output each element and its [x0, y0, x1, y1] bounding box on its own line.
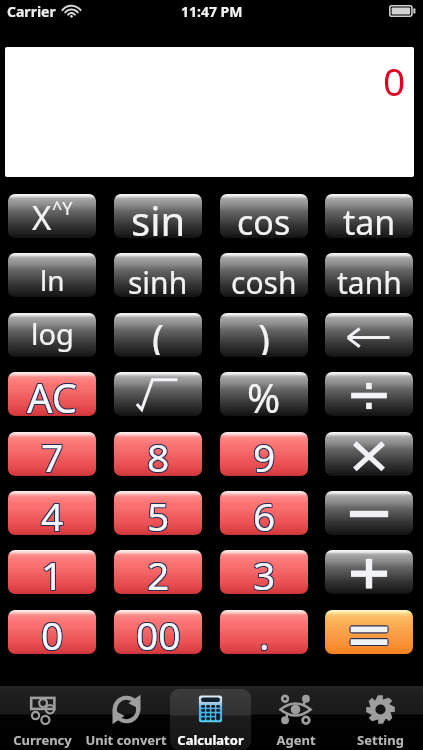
staticText: 0 — [42, 610, 65, 653]
staticText: tanh — [337, 262, 402, 297]
staticText: AC — [26, 372, 77, 414]
staticText: 8 — [147, 432, 170, 473]
button[interactable]: 6 — [220, 491, 308, 535]
button[interactable]: . — [220, 610, 308, 654]
staticText: 6 — [253, 491, 276, 534]
staticText: ln — [40, 261, 65, 297]
button[interactable]: Equals — [325, 610, 413, 654]
staticText: 2 — [147, 550, 170, 592]
button[interactable]: AC — [8, 372, 96, 416]
button[interactable]: ) — [220, 313, 308, 357]
staticText: Carrier — [7, 2, 56, 21]
staticText: 5 — [148, 491, 171, 532]
staticText: 0 — [41, 610, 64, 653]
staticText: 7 — [41, 432, 64, 475]
button[interactable]: 5 — [114, 491, 202, 535]
button[interactable]: 9 — [220, 432, 308, 476]
button[interactable]: Divide — [325, 372, 413, 416]
staticText: 0 — [42, 610, 65, 652]
button[interactable]: ln — [8, 253, 96, 297]
button[interactable]: tanh — [325, 253, 413, 297]
button[interactable]: Plus — [325, 550, 413, 594]
staticText: . — [258, 610, 269, 651]
button[interactable]: Setting — [338, 686, 423, 750]
staticText: 00 — [137, 610, 182, 653]
staticText: 4 — [41, 491, 64, 532]
button[interactable]: Backspace — [325, 313, 413, 357]
button[interactable]: X to the power of Y — [8, 194, 96, 238]
staticText: 00 — [136, 610, 181, 652]
button[interactable]: % — [220, 372, 308, 416]
staticText: 5 — [148, 491, 171, 533]
staticText: 9 — [253, 432, 276, 475]
staticText: 0 — [41, 610, 64, 651]
staticText: 3 — [254, 550, 277, 593]
button[interactable]: tan — [325, 194, 413, 238]
staticText: 00 — [135, 610, 180, 652]
staticText: 7 — [41, 432, 64, 474]
staticText: 0 — [40, 610, 63, 652]
staticText: 1 — [42, 550, 65, 592]
staticText: cosh — [231, 262, 297, 297]
button[interactable]: cos — [220, 194, 308, 238]
staticText: 7 — [42, 432, 65, 475]
staticText: AC — [27, 372, 78, 415]
button[interactable]: 2 — [114, 550, 202, 594]
staticText: Unit convert — [85, 731, 167, 749]
button[interactable]: 7 — [8, 432, 96, 476]
staticText: . — [259, 610, 270, 653]
staticText: AC — [26, 372, 77, 413]
button[interactable]: 4 — [8, 491, 96, 535]
button[interactable]: 0 — [8, 610, 96, 654]
staticText: 2 — [148, 550, 171, 592]
staticText: 8 — [146, 432, 169, 475]
staticText: 2 — [146, 550, 169, 591]
button[interactable]: 1 — [8, 550, 96, 594]
staticText: 6 — [254, 491, 277, 532]
staticText: 5 — [146, 491, 169, 533]
staticText: 4 — [41, 491, 64, 534]
staticText: tan — [343, 199, 396, 238]
staticText: 2 — [147, 550, 170, 591]
button[interactable]: Agent — [253, 686, 338, 750]
staticText: 9 — [254, 432, 277, 473]
staticText: 3 — [253, 550, 276, 592]
staticText: 9 — [253, 432, 276, 474]
staticText: 8 — [146, 432, 169, 473]
staticText: 5 — [147, 491, 170, 532]
staticText: 7 — [42, 432, 65, 474]
button[interactable]: sinh — [114, 253, 202, 297]
button[interactable]: Calculator — [168, 686, 253, 750]
staticText: 7 — [40, 432, 63, 475]
button[interactable]: Unit convert — [84, 686, 168, 750]
button[interactable]: sin — [114, 194, 202, 238]
staticText: AC — [27, 372, 78, 414]
staticText: 5 — [147, 491, 170, 533]
button[interactable]: 3 — [220, 550, 308, 594]
staticText: 8 — [147, 432, 170, 475]
button[interactable]: log — [8, 313, 96, 357]
staticText: 5 — [146, 491, 169, 534]
staticText: 11:47 PM — [181, 2, 243, 21]
staticText: Currency — [13, 731, 72, 749]
button[interactable]: cosh — [220, 253, 308, 297]
staticText: 4 — [40, 491, 63, 534]
button[interactable]: 00 — [114, 610, 202, 654]
staticText: 9 — [252, 432, 275, 474]
button[interactable]: Multiply — [325, 432, 413, 476]
staticText: 6 — [253, 491, 276, 532]
button[interactable]: Square root — [114, 372, 202, 416]
staticText: 1 — [40, 550, 63, 593]
staticText: 7 — [40, 432, 63, 474]
button[interactable]: Currency — [0, 686, 84, 750]
staticText: 8 — [148, 432, 171, 473]
staticText: 4 — [41, 491, 64, 533]
staticText: 6 — [254, 491, 277, 533]
button[interactable]: ( — [114, 313, 202, 357]
button[interactable]: 8 — [114, 432, 202, 476]
staticText: AC — [28, 372, 79, 414]
staticText: 0 — [383, 54, 406, 107]
button[interactable]: Minus — [325, 491, 413, 535]
staticText: Agent — [276, 731, 316, 749]
staticText: 9 — [254, 432, 277, 474]
